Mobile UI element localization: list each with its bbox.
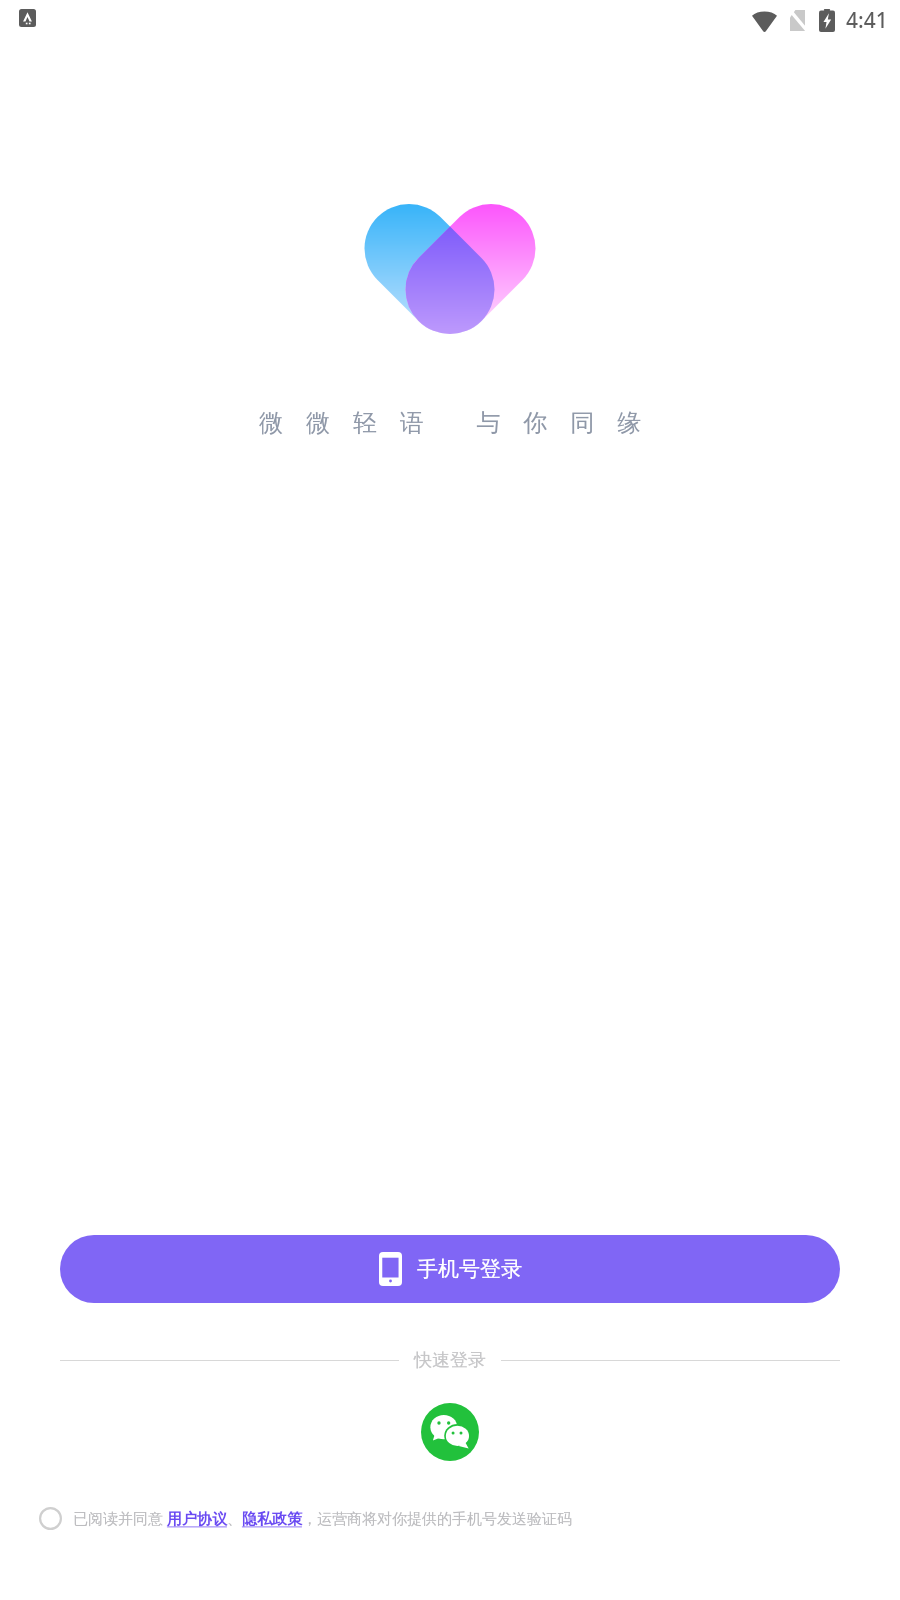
staticText: 微微轻语 与你同缘: [259, 405, 665, 438]
staticText: 手机号登录: [417, 1256, 522, 1282]
staticText: 4:41: [846, 6, 888, 35]
button[interactable]: WeChat login: [421, 1403, 479, 1461]
button[interactable]: 手机号登录: [60, 1235, 840, 1303]
button[interactable]: Agree to terms: [35, 1503, 65, 1533]
staticText: 已阅读并同意 用户协议、隐私政策，运营商将对你提供的手机号发送验证码: [73, 1508, 572, 1528]
staticText: 快速登录: [414, 1349, 486, 1372]
